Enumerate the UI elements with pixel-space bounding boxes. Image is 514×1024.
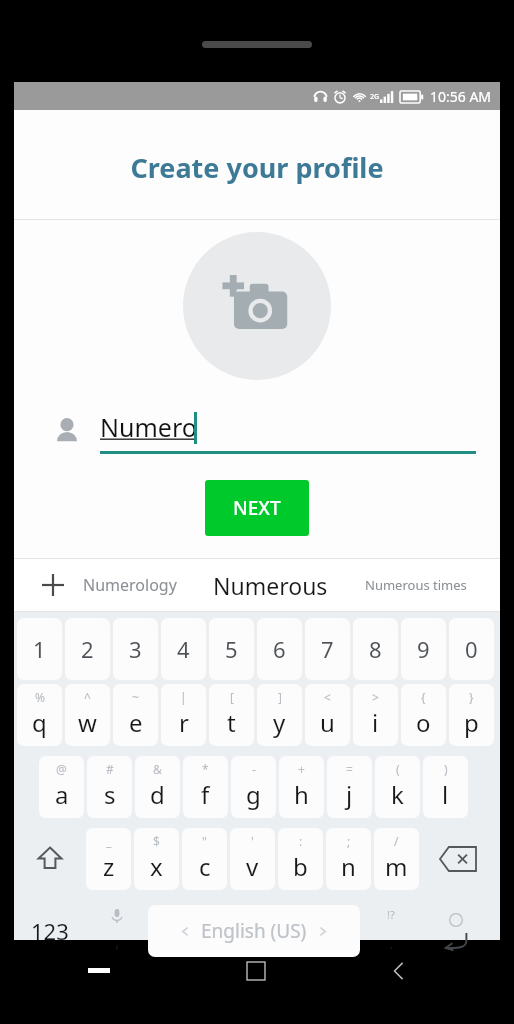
button[interactable]: @: [39, 756, 84, 818]
staticText: !?: [387, 907, 395, 922]
button[interactable]: Home: [247, 962, 265, 980]
button[interactable]: ;: [326, 828, 371, 890]
staticText: r: [179, 706, 189, 739]
button[interactable]: |: [161, 684, 206, 746]
button[interactable]: -: [231, 756, 276, 818]
button[interactable]: /: [374, 828, 419, 890]
button[interactable]: }: [449, 684, 494, 746]
button[interactable]: <: [305, 684, 350, 746]
staticText: 4: [177, 634, 190, 664]
button[interactable]: Numerous: [194, 558, 346, 612]
staticText: Numero: [100, 410, 197, 444]
staticText: -: [252, 761, 256, 777]
button[interactable]: 6: [257, 618, 302, 680]
staticText: ): [444, 761, 448, 777]
button[interactable]: >: [353, 684, 398, 746]
staticText: p: [464, 706, 479, 739]
button[interactable]: ^: [65, 684, 110, 746]
staticText: j: [346, 778, 353, 811]
staticText: 0: [465, 634, 478, 664]
staticText: z: [103, 850, 115, 883]
staticText: English (US): [201, 918, 307, 944]
button[interactable]: Shift: [14, 828, 86, 890]
staticText: @: [56, 761, 67, 777]
staticText: t: [227, 706, 236, 739]
staticText: o: [416, 706, 431, 739]
button[interactable]: Add profile photo: [183, 232, 331, 380]
button[interactable]: 3: [113, 618, 158, 680]
button[interactable]: Space, English (US): [148, 905, 360, 957]
staticText: $: [153, 833, 160, 849]
button[interactable]: (: [375, 756, 420, 818]
button[interactable]: ]: [257, 684, 302, 746]
button[interactable]: 1: [17, 618, 62, 680]
button[interactable]: +: [279, 756, 324, 818]
button[interactable]: 2: [65, 618, 110, 680]
staticText: ^: [84, 689, 91, 705]
staticText: 3: [129, 634, 142, 664]
staticText: 8: [369, 634, 382, 664]
staticText: Numerous: [213, 570, 328, 601]
button[interactable]: Back: [390, 962, 408, 980]
staticText: ]: [278, 689, 282, 705]
staticText: l: [442, 778, 449, 811]
staticText: |: [180, 689, 187, 705]
button[interactable]: {: [401, 684, 446, 746]
staticText: ": [202, 833, 207, 849]
button[interactable]: NEXT: [205, 480, 309, 536]
button[interactable]: 5: [209, 618, 254, 680]
staticText: /: [394, 833, 399, 849]
staticText: m: [385, 850, 408, 883]
staticText: q: [32, 706, 47, 739]
staticText: b: [293, 850, 308, 883]
button[interactable]: ): [423, 756, 468, 818]
staticText: %: [35, 689, 45, 705]
staticText: Create your profile: [130, 149, 384, 186]
button[interactable]: 0: [449, 618, 494, 680]
button[interactable]: &: [135, 756, 180, 818]
staticText: v: [246, 850, 259, 883]
button[interactable]: #: [87, 756, 132, 818]
button[interactable]: Numerous times: [346, 558, 486, 612]
staticText: a: [55, 778, 69, 811]
button[interactable]: Enter: [422, 900, 490, 962]
button[interactable]: Numero: [100, 406, 476, 454]
staticText: s: [104, 778, 116, 811]
button[interactable]: Period, symbols: [360, 900, 422, 962]
staticText: k: [391, 778, 404, 811]
button[interactable]: *: [183, 756, 228, 818]
staticText: d: [150, 778, 165, 811]
staticText: f: [201, 778, 210, 811]
button[interactable]: ~: [113, 684, 158, 746]
button[interactable]: Backspace: [422, 828, 494, 890]
button[interactable]: 8: [353, 618, 398, 680]
button[interactable]: 9: [401, 618, 446, 680]
staticText: <: [324, 689, 331, 705]
staticText: &: [153, 761, 162, 777]
button[interactable]: _: [86, 828, 131, 890]
staticText: 10:56 AM: [430, 87, 492, 106]
button[interactable]: $: [134, 828, 179, 890]
staticText: Numerous times: [365, 576, 467, 594]
button[interactable]: Expand suggestions: [28, 558, 77, 612]
button[interactable]: [: [209, 684, 254, 746]
staticText: ': [251, 833, 254, 849]
button[interactable]: 4: [161, 618, 206, 680]
button[interactable]: :: [278, 828, 323, 890]
staticText: ;: [347, 833, 351, 849]
button[interactable]: =: [327, 756, 372, 818]
staticText: g: [246, 778, 261, 811]
staticText: >: [372, 689, 379, 705]
staticText: +: [298, 761, 305, 777]
button[interactable]: 7: [305, 618, 350, 680]
button[interactable]: 123: [14, 900, 86, 962]
staticText: y: [273, 706, 286, 739]
staticText: w: [78, 706, 97, 739]
button[interactable]: Numerology: [66, 558, 194, 612]
staticText: :: [299, 833, 303, 849]
button[interactable]: ': [230, 828, 275, 890]
button[interactable]: ": [182, 828, 227, 890]
button[interactable]: Comma, voice input: [86, 900, 148, 962]
button[interactable]: %: [17, 684, 62, 746]
